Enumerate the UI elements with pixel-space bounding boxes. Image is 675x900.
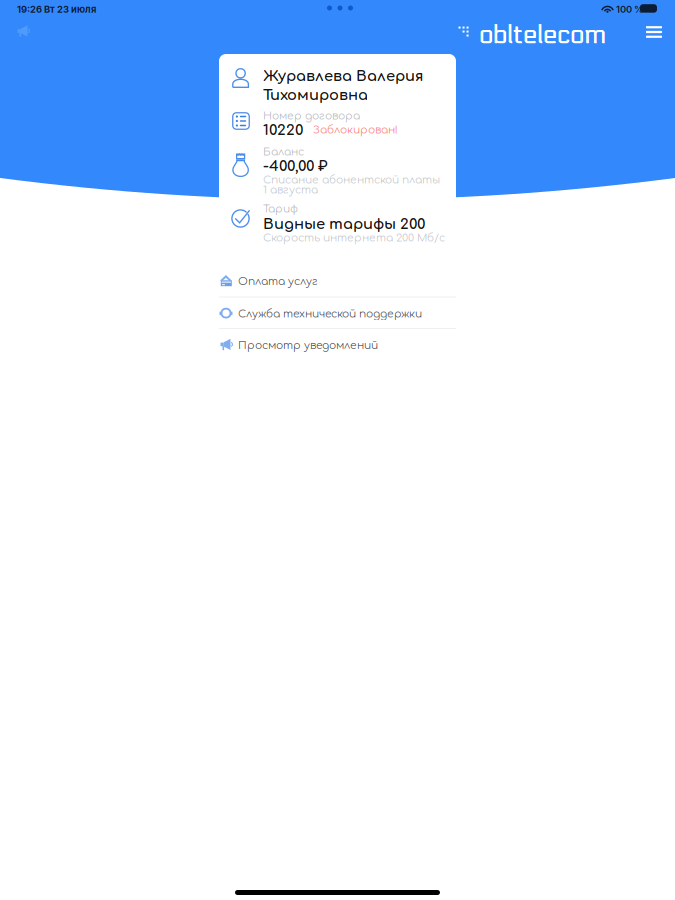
staticText: Баланс — [263, 146, 304, 158]
staticText: Служба технической поддержки — [238, 308, 422, 320]
staticText: Тариф — [263, 203, 298, 215]
staticText: Заблокирован! — [313, 124, 398, 136]
button[interactable]: Уведомления — [12, 20, 34, 42]
staticText: 100 % — [616, 4, 643, 15]
staticText: Списание абонентской платы — [263, 174, 440, 186]
staticText: Видные тарифы 200 — [263, 216, 425, 232]
staticText: Тихомировна — [263, 87, 368, 103]
staticText: 1 августа — [263, 184, 318, 196]
button[interactable]: Служба технической поддержки — [219, 297, 456, 329]
staticText: Просмотр уведомлений — [238, 339, 378, 351]
staticText: Скорость интернета 200 Мб/с — [263, 232, 445, 244]
button[interactable]: Просмотр уведомлений — [219, 329, 456, 360]
staticText: obltelecom — [479, 20, 606, 50]
staticText: obltelecom — [480, 20, 607, 50]
staticText: Вт 23 июля — [44, 4, 96, 15]
staticText: Журавлева Валерия — [263, 68, 423, 84]
staticText: -400,00 ₽ — [263, 158, 327, 174]
button[interactable]: Меню — [640, 19, 668, 45]
staticText: Номер договора — [263, 110, 360, 122]
staticText: Оплата услуг — [238, 275, 318, 287]
staticText: 10220 — [263, 122, 303, 138]
button[interactable]: Оплата услуг — [219, 265, 456, 296]
staticText: 19:26 — [17, 4, 42, 15]
